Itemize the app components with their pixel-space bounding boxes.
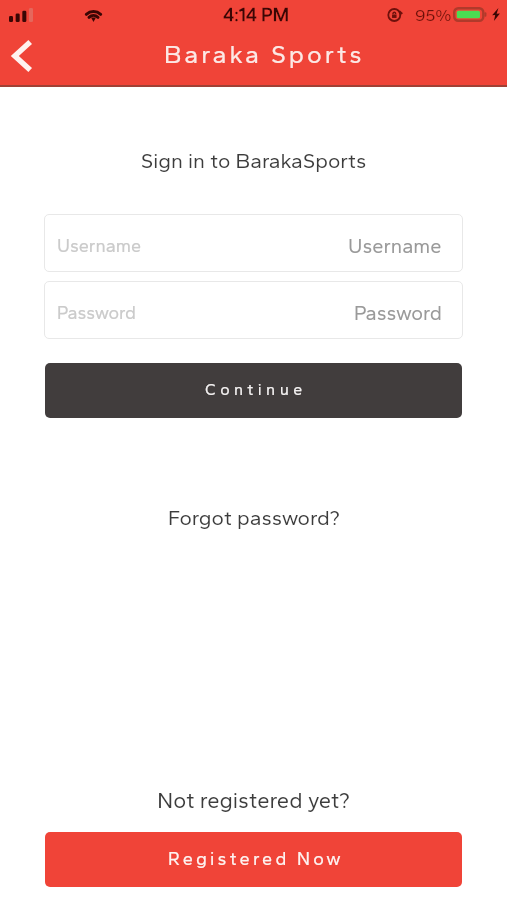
staticText: Registered Now [168, 848, 344, 870]
button[interactable]: Back [0, 32, 44, 80]
staticText: 95% [415, 5, 452, 25]
staticText: Password [57, 302, 137, 324]
staticText: Not registered yet? [0, 787, 507, 813]
staticText: Forgot password? [168, 505, 340, 530]
staticText: Continue [205, 380, 307, 399]
staticText: Password [354, 301, 442, 325]
button[interactable]: Continue [45, 363, 462, 418]
staticText: Username [348, 234, 442, 258]
staticText: 4:14 PM [223, 4, 290, 26]
staticText: Baraka Sports [164, 39, 365, 69]
button[interactable]: Username [44, 214, 463, 272]
button[interactable]: Registered Now [45, 832, 462, 887]
button[interactable]: Password [44, 281, 463, 339]
button[interactable]: Forgot password? [158, 501, 350, 534]
staticText: Sign in to BarakaSports [0, 148, 507, 173]
staticText: Username [57, 235, 142, 257]
